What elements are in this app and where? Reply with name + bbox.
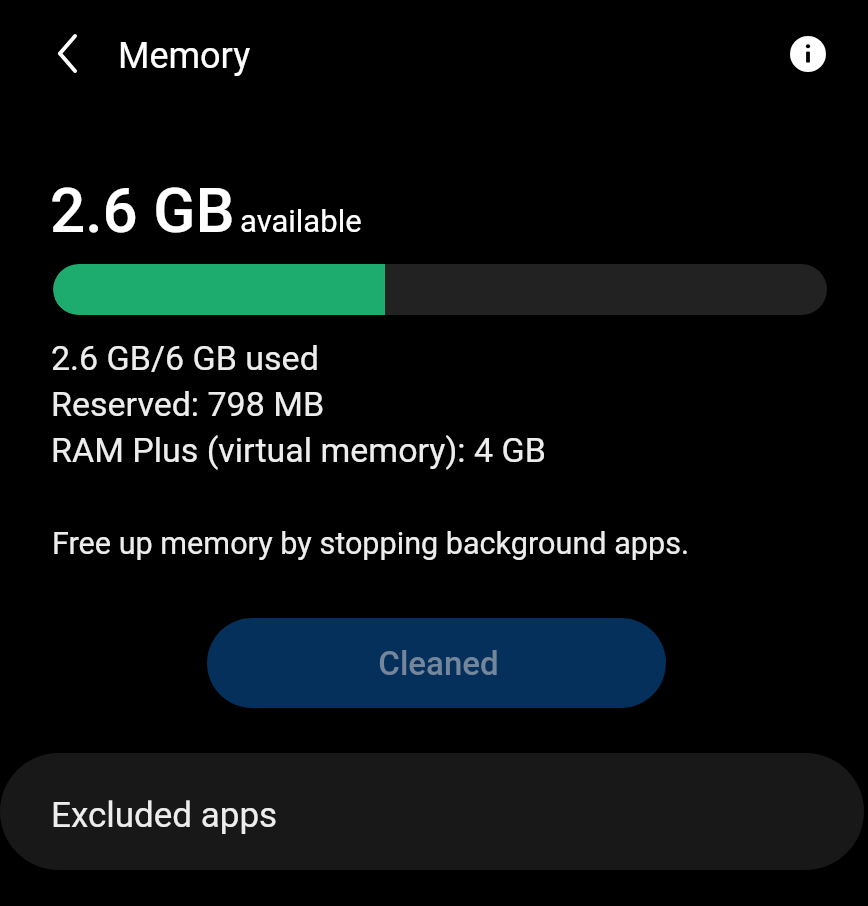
staticText: Memory [118,35,251,77]
staticText: Excluded apps [51,795,278,836]
staticText: Free up memory by stopping background ap… [52,526,689,562]
button[interactable]: Cleaned [207,618,666,708]
staticText: Cleaned [378,644,499,683]
button[interactable]: Excluded apps [0,753,864,870]
button[interactable]: Navigate up [37,23,97,83]
staticText: available [240,203,362,239]
staticText: 2.6 GB/6 GB used [51,338,319,378]
staticText: RAM Plus (virtual memory): 4 GB [51,430,546,470]
staticText: Reserved: 798 MB [51,384,325,424]
button[interactable]: Information [778,24,838,84]
staticText: 2.6 GB [50,174,235,247]
